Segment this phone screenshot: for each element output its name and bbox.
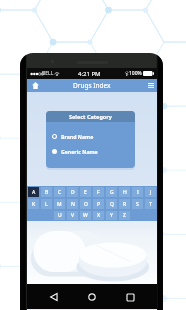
staticText: A bbox=[32, 189, 36, 196]
button[interactable]: M bbox=[54, 199, 65, 209]
button[interactable]: I bbox=[132, 187, 143, 197]
staticText: Q bbox=[110, 201, 114, 208]
staticText: N bbox=[71, 201, 75, 208]
button[interactable]: E bbox=[80, 187, 91, 197]
button[interactable]: S bbox=[132, 199, 143, 209]
button[interactable]: N bbox=[67, 199, 78, 209]
staticText: U bbox=[58, 212, 62, 219]
staticText: E bbox=[84, 189, 87, 196]
button[interactable]: A bbox=[28, 187, 39, 197]
button[interactable]: Z bbox=[119, 211, 130, 220]
button[interactable]: V bbox=[67, 211, 78, 220]
staticText: Generic Name bbox=[61, 148, 98, 155]
button[interactable]: J bbox=[145, 187, 156, 197]
button[interactable]: B bbox=[41, 187, 52, 197]
button[interactable]: Y bbox=[106, 211, 117, 220]
button[interactable]: Home bbox=[81, 286, 103, 308]
button[interactable]: R bbox=[119, 199, 130, 209]
button[interactable]: Home bbox=[29, 79, 159, 92]
staticText: M bbox=[57, 201, 62, 208]
button[interactable]: Q bbox=[106, 199, 117, 209]
button[interactable]: Brand Name bbox=[46, 133, 135, 140]
button[interactable]: C bbox=[54, 187, 65, 197]
button[interactable]: F bbox=[93, 187, 104, 197]
staticText: J bbox=[150, 189, 152, 196]
button[interactable]: G bbox=[106, 187, 117, 197]
staticText: 100% bbox=[129, 70, 142, 77]
button[interactable]: Generic Name bbox=[46, 148, 135, 155]
button[interactable]: T bbox=[145, 199, 156, 209]
button[interactable]: K bbox=[28, 199, 39, 209]
button[interactable]: D bbox=[67, 187, 78, 197]
button[interactable]: P bbox=[93, 199, 104, 209]
staticText: C bbox=[58, 189, 62, 196]
staticText: Select Category bbox=[69, 113, 112, 120]
staticText: F bbox=[97, 189, 100, 196]
staticText: BELL bbox=[42, 70, 54, 77]
button[interactable]: Menu bbox=[144, 79, 157, 92]
staticText: T bbox=[149, 201, 152, 208]
staticText: S bbox=[136, 201, 139, 208]
staticText: B bbox=[45, 189, 49, 196]
staticText: O bbox=[84, 201, 88, 208]
staticText: X bbox=[97, 212, 101, 219]
staticText: Y bbox=[110, 212, 113, 219]
button[interactable]: W bbox=[80, 211, 91, 220]
staticText: D bbox=[71, 189, 75, 196]
staticText: 4:21 PM bbox=[78, 70, 101, 78]
button[interactable]: X bbox=[93, 211, 104, 220]
button[interactable]: Recents bbox=[119, 286, 141, 308]
staticText: L bbox=[45, 201, 48, 208]
staticText: H bbox=[123, 189, 127, 196]
staticText: K bbox=[32, 201, 36, 208]
button[interactable]: L bbox=[41, 199, 52, 209]
staticText: P bbox=[97, 201, 101, 208]
staticText: Brand Name bbox=[61, 133, 94, 140]
button[interactable]: O bbox=[80, 199, 91, 209]
staticText: I bbox=[137, 189, 139, 196]
button[interactable]: H bbox=[119, 187, 130, 197]
staticText: W bbox=[83, 212, 88, 219]
button[interactable]: U bbox=[54, 211, 65, 220]
staticText: Z bbox=[123, 212, 126, 219]
staticText: G bbox=[110, 189, 114, 196]
staticText: Drugs Index bbox=[73, 81, 111, 90]
button[interactable]: Back bbox=[43, 286, 65, 308]
staticText: R bbox=[123, 201, 127, 208]
staticText: V bbox=[71, 212, 75, 219]
